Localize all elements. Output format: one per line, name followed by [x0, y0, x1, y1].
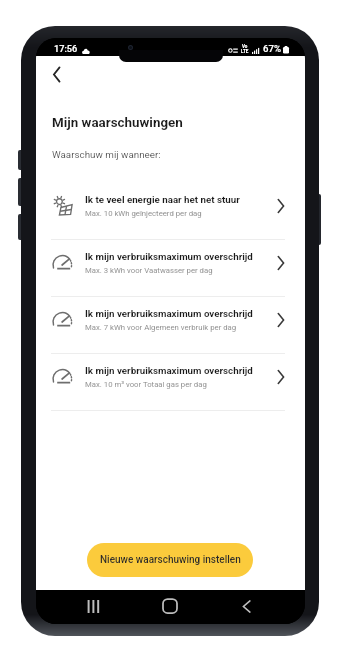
staticText: Mijn waarschuwingen [52, 115, 183, 131]
staticText: Nieuwe waarschuwing instellen [100, 554, 241, 566]
button[interactable]: Nieuwe waarschuwing instellen [87, 543, 253, 577]
staticText: Max. 3 kWh voor Vaatwasser per dag [85, 266, 213, 275]
staticText: Max. 7 kWh voor Algemeen verbruik per da… [85, 323, 237, 332]
button[interactable]: Ik mijn verbruiksmaximum overschrijd [36, 354, 305, 411]
staticText: Max. 10 kWh geïnjecteerd per dag [85, 209, 202, 218]
button[interactable]: Back [233, 593, 259, 619]
button[interactable]: Ik te veel energie naar het net stuur [36, 183, 305, 240]
staticText: Waarschuw mij wanneer: [52, 149, 161, 160]
staticText: 17:56 [54, 43, 78, 54]
staticText: Vo [242, 44, 248, 49]
button[interactable]: Home [157, 593, 183, 619]
staticText: Max. 10 m³ voor Totaal gas per dag [85, 380, 207, 389]
button[interactable]: Ik mijn verbruiksmaximum overschrijd [36, 297, 305, 354]
staticText: Ik mijn verbruiksmaximum overschrijd [85, 365, 253, 376]
button[interactable]: Recents [80, 593, 106, 619]
staticText: Ik mijn verbruiksmaximum overschrijd [85, 251, 253, 262]
staticText: LTE [241, 49, 249, 54]
button[interactable]: Back [44, 61, 70, 87]
button[interactable]: Ik mijn verbruiksmaximum overschrijd [36, 240, 305, 297]
staticText: Ik mijn verbruiksmaximum overschrijd [85, 308, 253, 319]
staticText: 67% [263, 43, 281, 54]
staticText: Ik te veel energie naar het net stuur [85, 194, 240, 205]
